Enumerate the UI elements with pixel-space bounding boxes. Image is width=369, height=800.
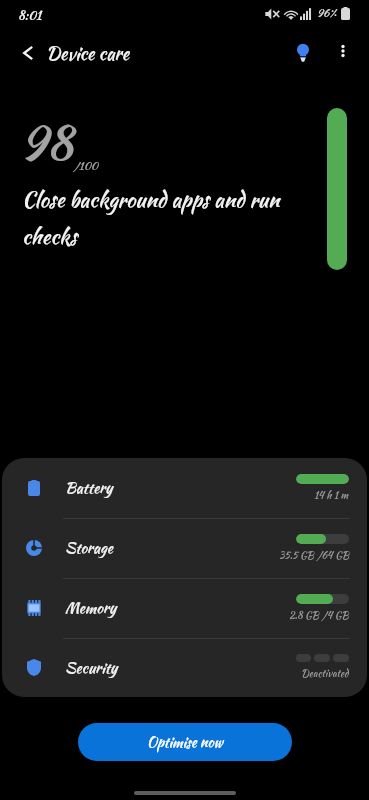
staticText: Storage — [65, 537, 113, 559]
button[interactable]: Back — [0, 30, 46, 76]
staticText: Memory — [65, 597, 117, 619]
staticText: Security — [65, 657, 118, 679]
staticText: /100 — [73, 158, 98, 174]
staticText: Deactivated — [301, 666, 349, 681]
button[interactable]: Security — [2, 638, 367, 697]
staticText: 98 — [20, 108, 73, 176]
staticText: 96% — [317, 5, 337, 21]
button[interactable]: Battery — [2, 458, 367, 518]
staticText: 35.5 GB /64 GB — [279, 548, 349, 563]
staticText: Device care — [46, 40, 130, 66]
button[interactable]: More options — [323, 31, 363, 71]
staticText: 14 h 1 m — [314, 488, 349, 503]
button[interactable]: Optimise now — [78, 723, 292, 761]
staticText: 8:01 — [18, 7, 42, 24]
staticText: Battery — [65, 477, 113, 499]
staticText: Optimise now — [147, 732, 223, 752]
staticText: Close background apps and run checks — [22, 184, 280, 252]
button[interactable]: Storage — [2, 518, 367, 578]
button[interactable]: Tips — [283, 31, 323, 71]
button[interactable]: Memory — [2, 578, 367, 638]
staticText: 2.8 GB /4 GB — [289, 608, 349, 623]
